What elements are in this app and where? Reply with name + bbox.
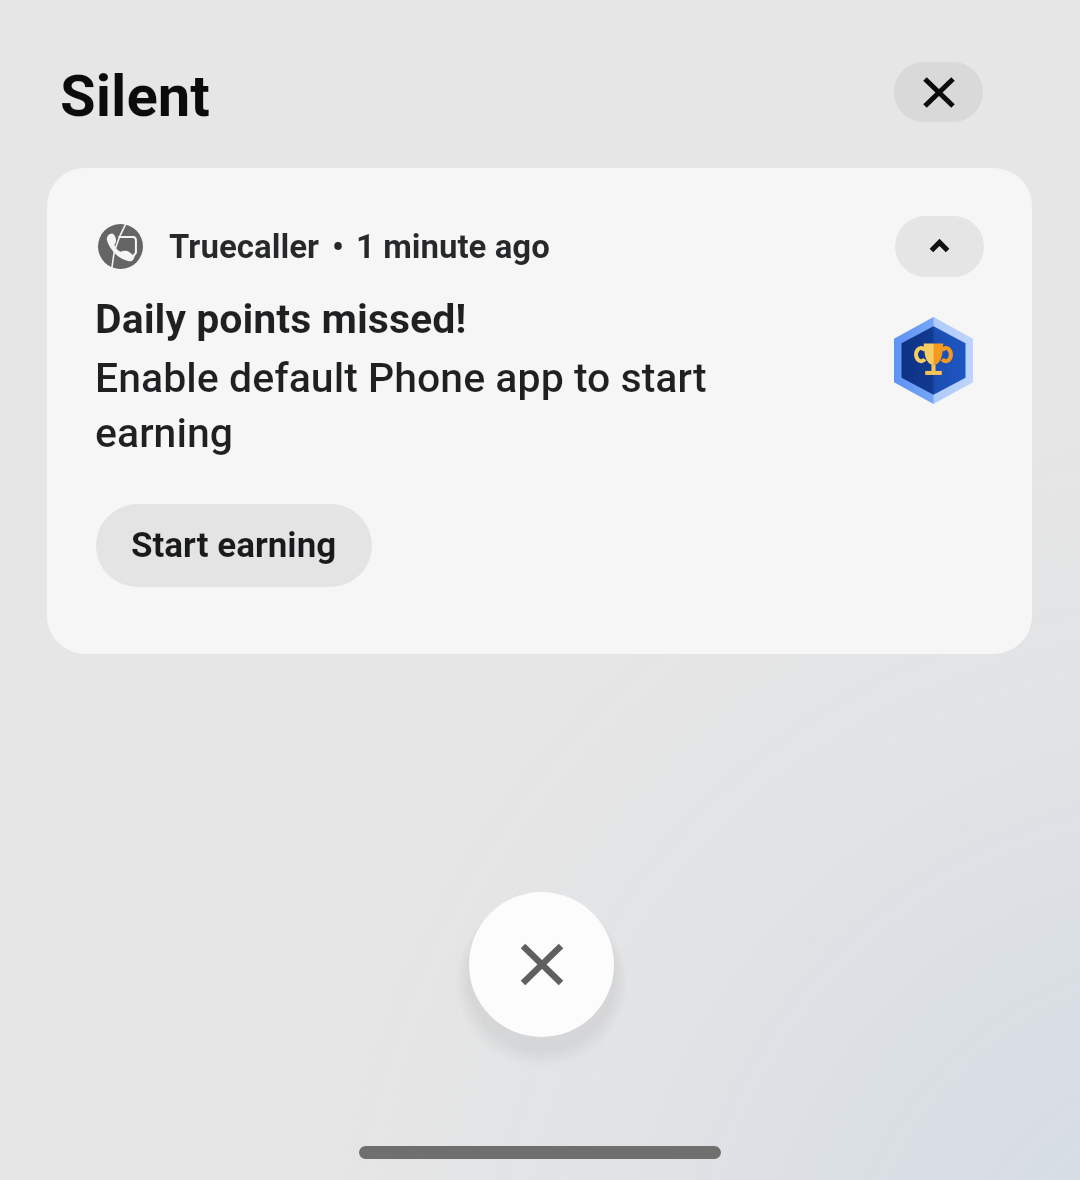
button[interactable]: Collapse notification [895,216,984,277]
button[interactable]: Clear all [469,892,614,1037]
staticText: Truecaller [169,227,320,266]
button[interactable]: Truecaller [47,168,1032,654]
staticText: Daily points missed! [95,295,467,343]
staticText: Enable default Phone app to start earnin… [95,354,735,457]
staticText: 1 minute ago [356,227,550,266]
staticText: Silent [60,62,210,130]
button[interactable]: Start earning [96,504,372,587]
staticText: Start earning [131,525,337,566]
button[interactable]: Clear all notifications [894,62,983,122]
staticText: • [332,227,344,266]
